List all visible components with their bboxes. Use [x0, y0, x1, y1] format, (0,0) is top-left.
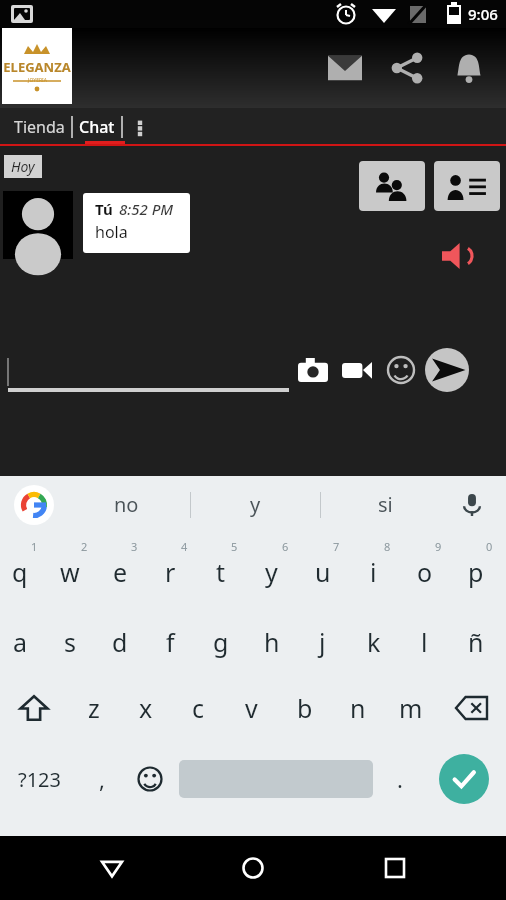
- button[interactable]: .: [377, 743, 422, 815]
- staticText: e: [113, 555, 128, 589]
- staticText: q: [12, 555, 28, 589]
- button[interactable]: i: [353, 533, 404, 603]
- button[interactable]: Compartir: [376, 37, 438, 99]
- button[interactable]: m: [384, 673, 437, 743]
- staticText: 2: [81, 539, 88, 554]
- button[interactable]: e: [100, 533, 150, 603]
- button[interactable]: Mensajes: [314, 37, 376, 99]
- button[interactable]: x: [120, 673, 172, 743]
- button[interactable]: Tú: [83, 193, 190, 253]
- button[interactable]: a: [0, 603, 50, 673]
- staticText: j: [319, 625, 326, 659]
- button[interactable]: Contacto: [434, 161, 500, 211]
- staticText: d: [112, 625, 128, 659]
- staticText: k: [367, 625, 381, 659]
- button[interactable]: Aceptar: [422, 743, 506, 815]
- staticText: JOYERIA: [28, 77, 47, 84]
- staticText: 7: [333, 539, 340, 554]
- staticText: i: [370, 555, 377, 589]
- button[interactable]: si: [321, 476, 450, 533]
- button[interactable]: Emoticonos: [124, 743, 175, 815]
- button[interactable]: Tienda: [8, 108, 71, 146]
- button[interactable]: no: [62, 476, 190, 533]
- staticText: z: [88, 691, 100, 725]
- button[interactable]: Atrás: [82, 838, 142, 898]
- staticText: s: [64, 625, 76, 659]
- staticText: 5: [231, 539, 238, 554]
- button[interactable]: ,: [79, 743, 124, 815]
- staticText: .: [397, 764, 403, 794]
- staticText: no: [114, 491, 139, 518]
- button[interactable]: v: [225, 673, 278, 743]
- button[interactable]: Cámara: [291, 348, 335, 392]
- button[interactable]: q: [0, 533, 50, 603]
- staticText: o: [417, 555, 433, 589]
- staticText: 3: [131, 539, 138, 554]
- button[interactable]: Recientes: [365, 838, 425, 898]
- button[interactable]: l: [404, 603, 455, 673]
- staticText: l: [421, 625, 428, 659]
- button[interactable]: Inicio: [223, 838, 283, 898]
- button[interactable]: s: [50, 603, 100, 673]
- button[interactable]: Mayúsculas: [0, 673, 68, 743]
- staticText: 1: [31, 539, 38, 554]
- staticText: g: [213, 625, 229, 659]
- staticText: b: [297, 691, 313, 725]
- staticText: 6: [282, 539, 289, 554]
- button[interactable]: r: [150, 533, 200, 603]
- staticText: 8:52 PM: [119, 199, 174, 219]
- button[interactable]: Notificaciones: [438, 37, 500, 99]
- button[interactable]: Voz: [450, 483, 494, 527]
- staticText: ,: [99, 764, 105, 794]
- button[interactable]: z: [68, 673, 120, 743]
- button[interactable]: u: [302, 533, 353, 603]
- button[interactable]: Más opciones: [123, 108, 157, 146]
- button[interactable]: j: [302, 603, 353, 673]
- button[interactable]: h: [251, 603, 302, 673]
- button[interactable]: f: [150, 603, 200, 673]
- staticText: Hoy: [11, 157, 35, 176]
- staticText: t: [216, 555, 226, 589]
- button[interactable]: k: [353, 603, 404, 673]
- button[interactable]: Sonido: [436, 234, 480, 278]
- button[interactable]: Participantes: [359, 161, 425, 211]
- button[interactable]: y: [251, 533, 302, 603]
- button[interactable]: Emoji: [379, 348, 423, 392]
- staticText: 9: [435, 539, 442, 554]
- staticText: y: [250, 491, 261, 518]
- staticText: 9:06: [468, 4, 498, 24]
- staticText: ñ: [468, 625, 484, 659]
- button[interactable]: Google: [14, 485, 54, 525]
- button[interactable]: Logo Eleganza: [2, 28, 72, 104]
- staticText: ELEGANZA: [3, 58, 71, 76]
- staticText: m: [399, 691, 423, 725]
- button[interactable]: n: [331, 673, 384, 743]
- staticText: Chat: [79, 116, 115, 138]
- button[interactable]: y: [191, 476, 320, 533]
- button[interactable]: [6, 344, 291, 396]
- button[interactable]: Video: [335, 348, 379, 392]
- staticText: hola: [95, 221, 128, 243]
- button[interactable]: p: [455, 533, 506, 603]
- button[interactable]: t: [200, 533, 251, 603]
- button[interactable]: d: [100, 603, 150, 673]
- button[interactable]: o: [404, 533, 455, 603]
- staticText: Tú: [95, 199, 113, 219]
- button[interactable]: c: [172, 673, 225, 743]
- staticText: n: [350, 691, 366, 725]
- staticText: ?123: [18, 766, 61, 793]
- staticText: 8: [384, 539, 391, 554]
- button[interactable]: b: [278, 673, 331, 743]
- button[interactable]: ñ: [455, 603, 506, 673]
- staticText: p: [468, 555, 484, 589]
- button[interactable]: ?123: [0, 743, 79, 815]
- staticText: w: [60, 555, 80, 589]
- staticText: h: [264, 625, 280, 659]
- button[interactable]: Borrar: [437, 673, 506, 743]
- button[interactable]: g: [200, 603, 251, 673]
- staticText: 0: [486, 539, 493, 554]
- button[interactable]: w: [50, 533, 100, 603]
- button[interactable]: Enviar: [423, 346, 471, 394]
- button[interactable]: Chat: [73, 108, 121, 146]
